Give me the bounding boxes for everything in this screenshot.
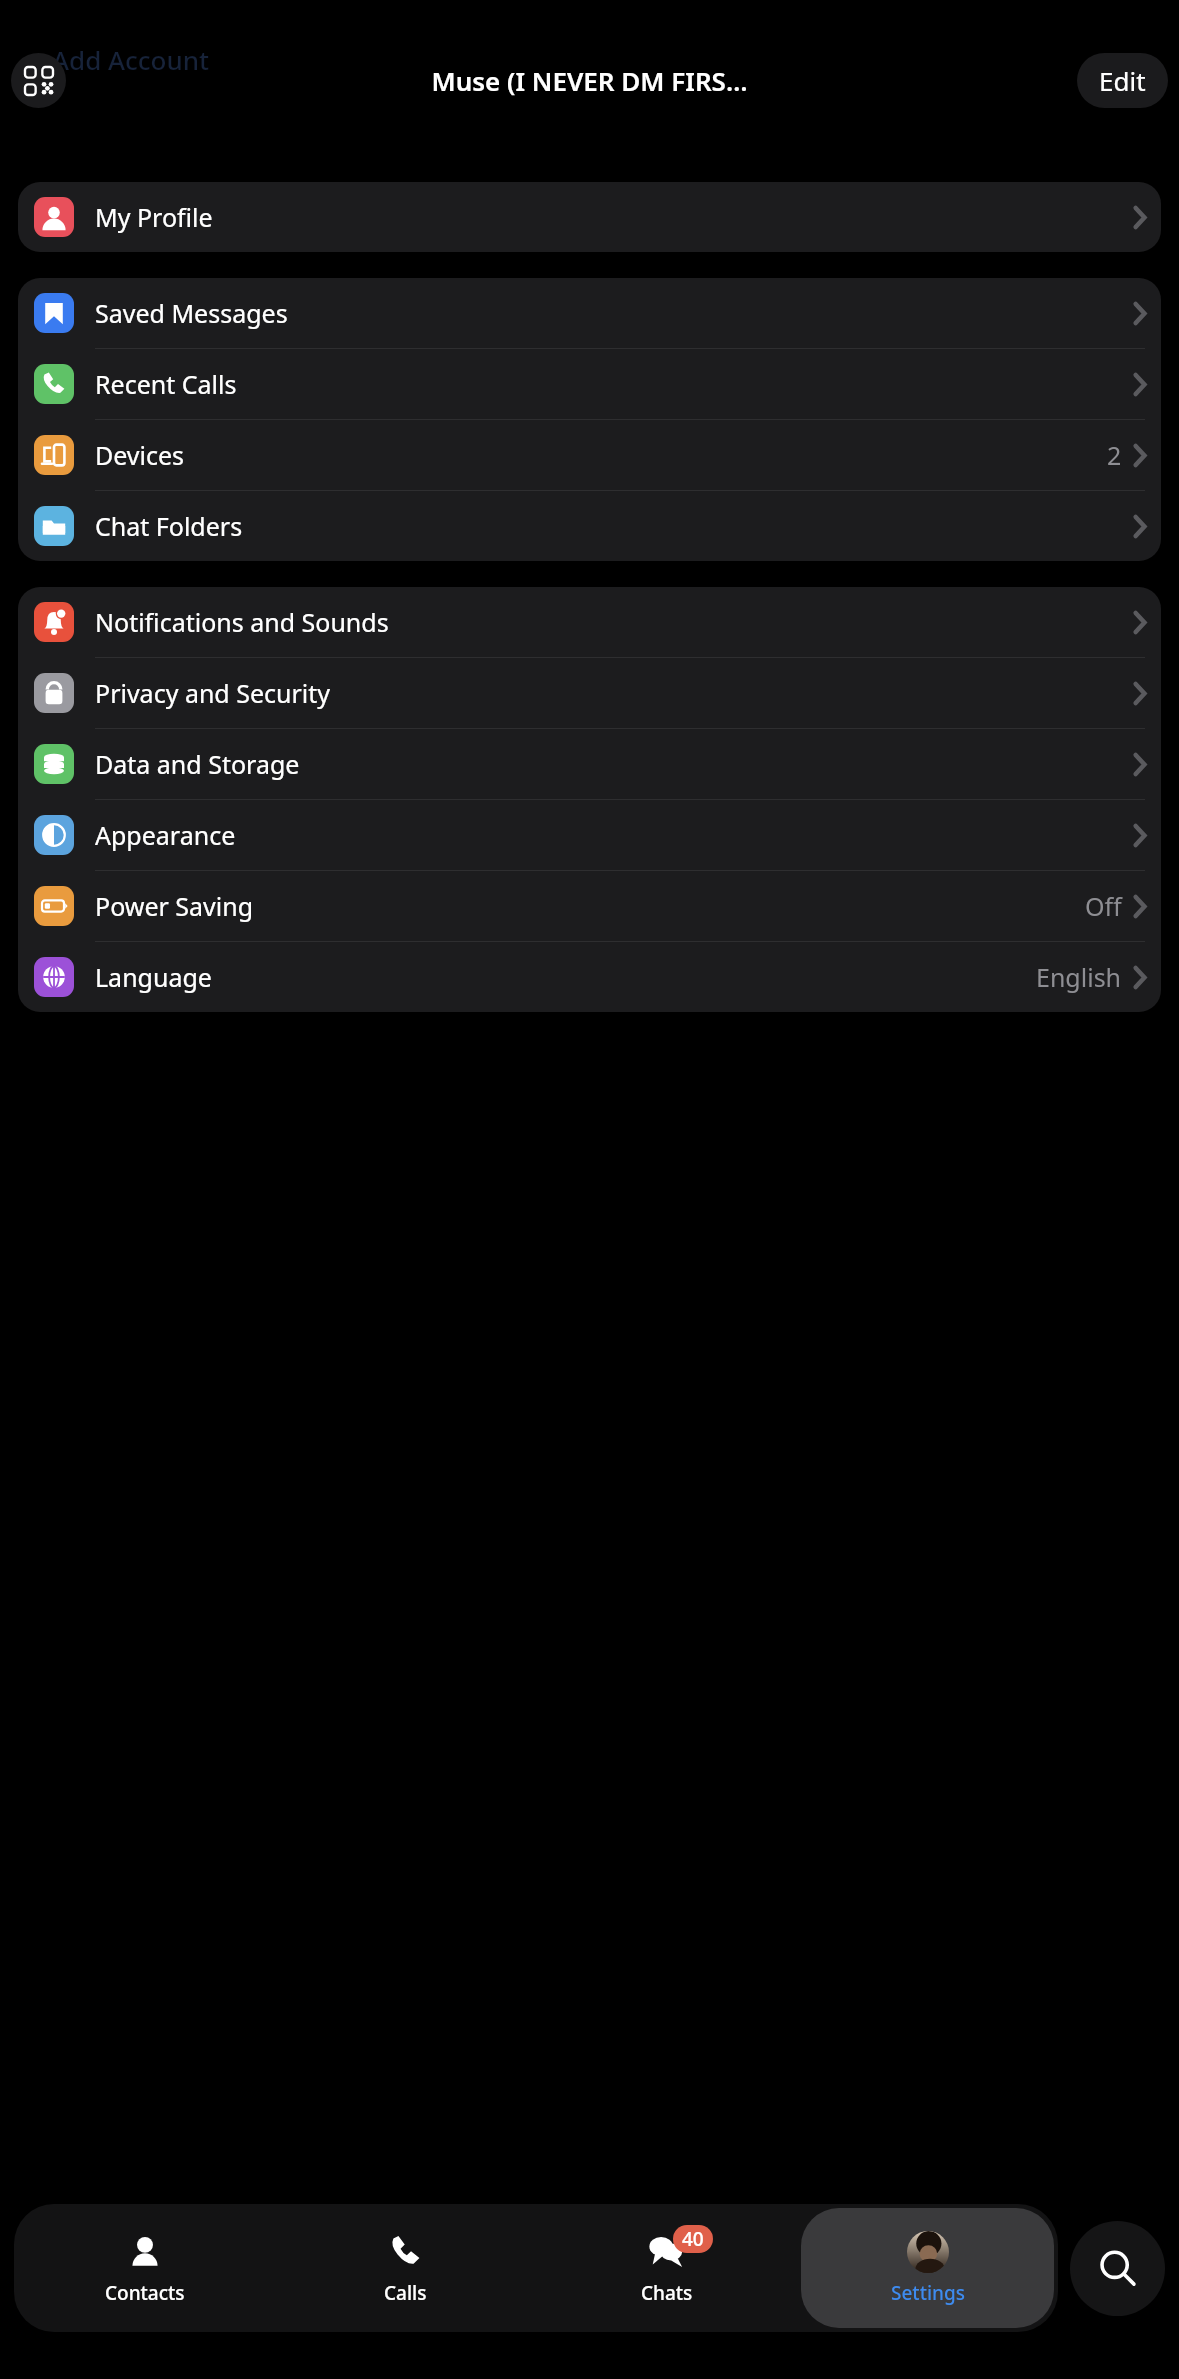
button[interactable]: Devices: [18, 420, 1161, 491]
staticText: Contacts: [105, 2280, 185, 2306]
staticText: Chats: [641, 2280, 693, 2306]
staticText: Devices: [95, 438, 1107, 472]
staticText: 40: [682, 2226, 704, 2252]
button[interactable]: Chat Folders: [18, 491, 1161, 561]
staticText: English: [1036, 960, 1122, 994]
staticText: My Profile: [95, 200, 1134, 234]
staticText: Off: [1085, 889, 1122, 923]
staticText: Privacy and Security: [95, 676, 1134, 710]
staticText: Notifications and Sounds: [95, 605, 1134, 639]
staticText: Add Account: [52, 42, 210, 77]
staticText: Language: [95, 960, 1036, 994]
staticText: Saved Messages: [95, 296, 1134, 330]
button[interactable]: Calls: [279, 2208, 532, 2328]
button[interactable]: Recent Calls: [18, 349, 1161, 420]
button[interactable]: Appearance: [18, 800, 1161, 871]
button[interactable]: Saved Messages: [18, 278, 1161, 349]
staticText: Calls: [384, 2280, 427, 2306]
button[interactable]: Power Saving: [18, 871, 1161, 942]
button[interactable]: 40: [540, 2208, 793, 2328]
staticText: Edit: [1099, 63, 1146, 98]
button[interactable]: Search: [1070, 2221, 1165, 2316]
button[interactable]: My Profile: [18, 182, 1161, 252]
button[interactable]: Privacy and Security: [18, 658, 1161, 729]
button[interactable]: Edit: [1077, 53, 1168, 108]
button[interactable]: Contacts: [18, 2208, 271, 2328]
staticText: Data and Storage: [95, 747, 1134, 781]
button[interactable]: Data and Storage: [18, 729, 1161, 800]
staticText: Power Saving: [95, 889, 1085, 923]
staticText: Muse (I NEVER DM FIRS…: [431, 63, 748, 98]
staticText: Chat Folders: [95, 509, 1134, 543]
button[interactable]: Language: [18, 942, 1161, 1012]
staticText: 2: [1107, 438, 1122, 472]
staticText: Settings: [891, 2280, 965, 2306]
button[interactable]: Settings: [801, 2208, 1054, 2328]
staticText: Recent Calls: [95, 367, 1134, 401]
staticText: Appearance: [95, 818, 1134, 852]
button[interactable]: QR code: [11, 53, 66, 108]
button[interactable]: Notifications and Sounds: [18, 587, 1161, 658]
